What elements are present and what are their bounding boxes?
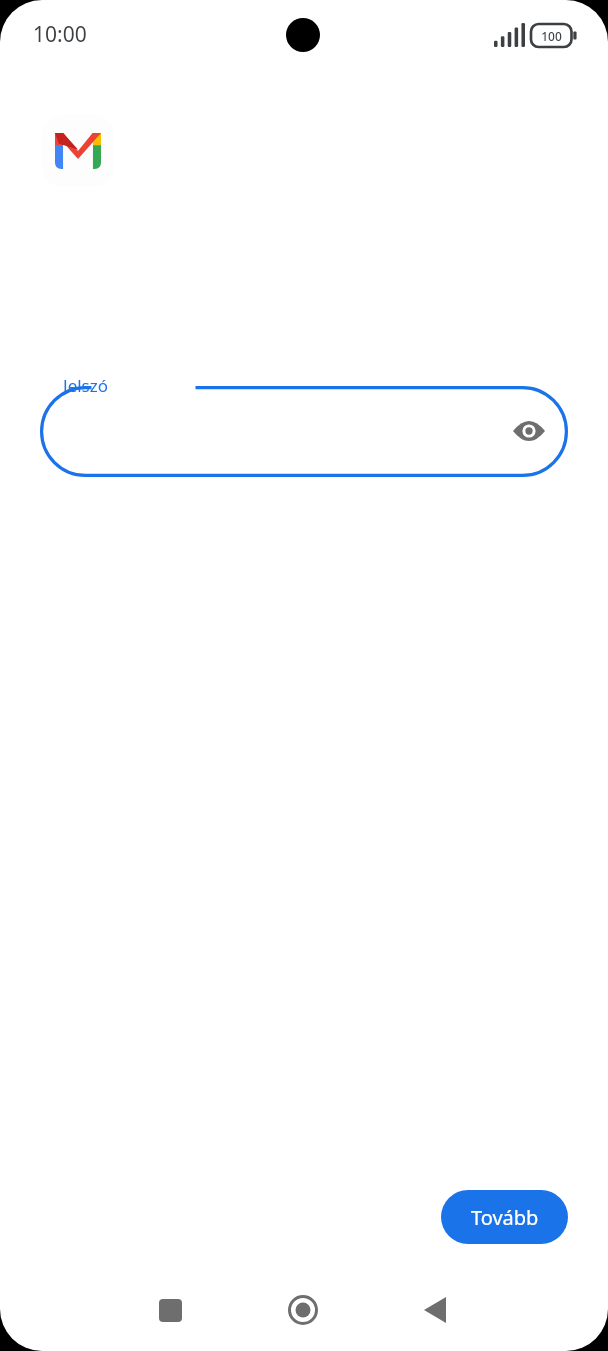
button[interactable]: Gmail — [42, 115, 114, 187]
staticText: Jelszó — [63, 374, 109, 397]
button[interactable]: Tovább — [441, 1190, 568, 1244]
staticText: Tovább — [471, 1204, 539, 1231]
staticText: 10:00 — [33, 20, 87, 49]
button[interactable]: Home — [279, 1286, 327, 1334]
button[interactable]: Recent apps — [146, 1286, 194, 1334]
button[interactable] — [40, 386, 568, 477]
button[interactable]: Show password — [505, 407, 553, 455]
staticText: 100 — [541, 28, 562, 44]
button[interactable]: Back — [411, 1286, 459, 1334]
